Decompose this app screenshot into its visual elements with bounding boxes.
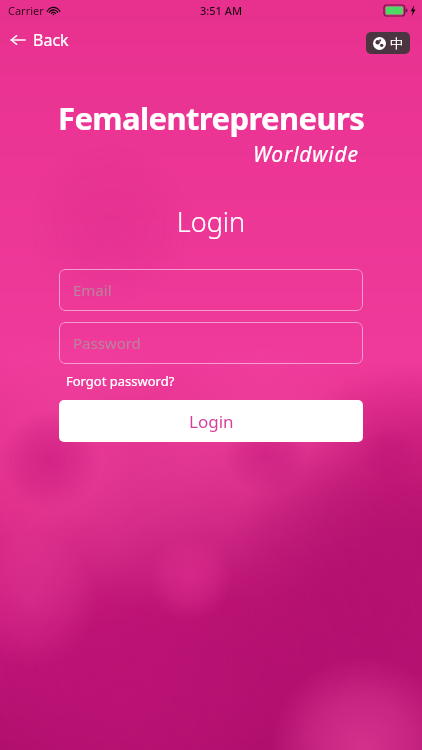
staticText: Forgot password? (66, 372, 175, 390)
button[interactable]: Login (59, 400, 363, 442)
staticText: Worldwide (253, 140, 359, 169)
staticText: 3:51 AM (200, 3, 243, 18)
button[interactable]: Back (0, 23, 83, 57)
button[interactable]: Password (59, 322, 363, 364)
button[interactable]: Switch language to Chinese (366, 32, 410, 54)
staticText: Carrier (8, 3, 44, 18)
staticText: Login (189, 410, 234, 433)
button[interactable]: Email (59, 269, 363, 311)
staticText: Email (73, 280, 112, 300)
staticText: Back (33, 29, 69, 51)
staticText: 中 (390, 35, 403, 51)
staticText: Login (0, 203, 422, 240)
button[interactable]: Forgot password? (59, 370, 181, 392)
staticText: Femalentrepreneurs (58, 97, 365, 139)
staticText: Password (73, 333, 141, 353)
